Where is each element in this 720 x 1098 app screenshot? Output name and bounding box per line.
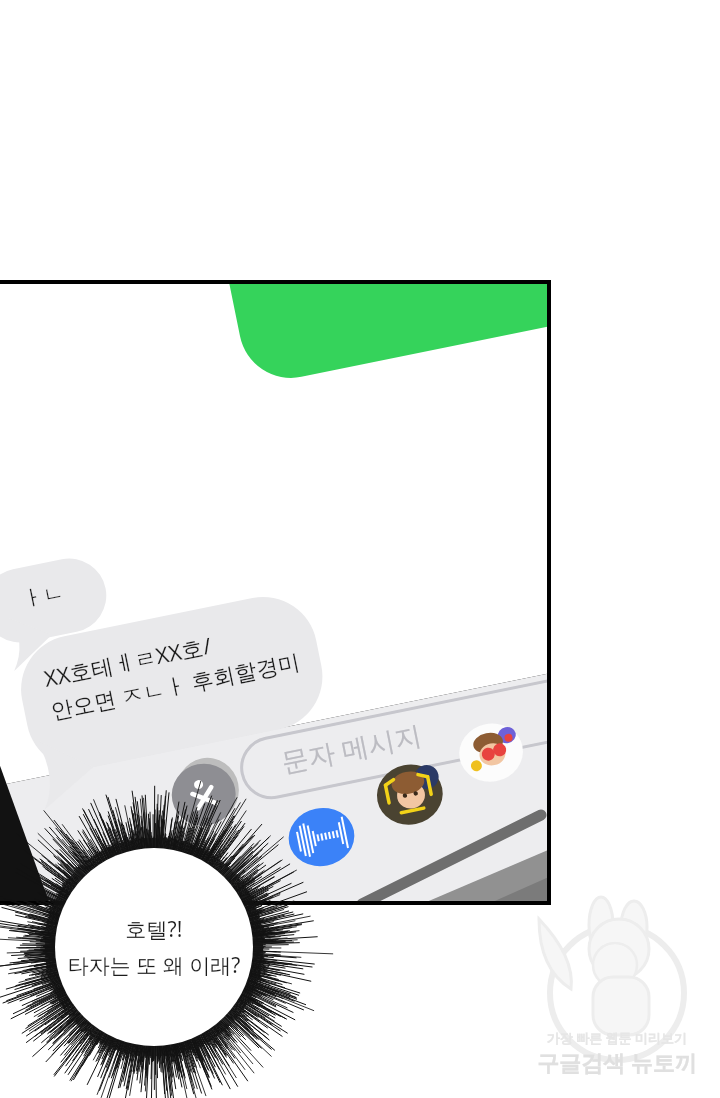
button[interactable] bbox=[0, 0, 720, 1098]
